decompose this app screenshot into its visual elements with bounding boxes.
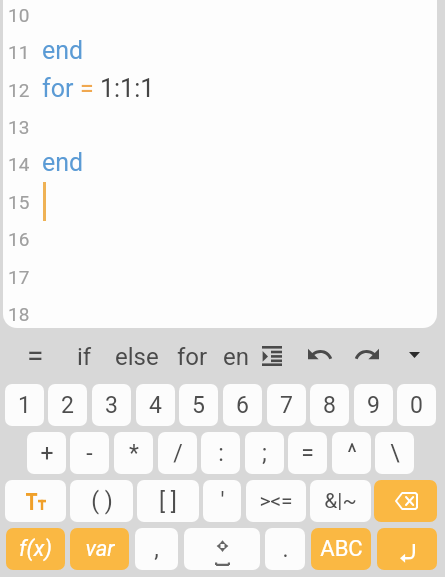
button[interactable]: * <box>114 432 153 474</box>
button[interactable]: 6 <box>223 384 262 426</box>
staticText: = <box>80 74 100 103</box>
staticText: 16 <box>8 228 30 250</box>
button[interactable]: - <box>70 432 109 474</box>
button[interactable]: 3 <box>92 384 131 426</box>
button[interactable]: ; <box>245 432 284 474</box>
button[interactable]: + <box>27 432 66 474</box>
button[interactable]: = <box>11 338 59 370</box>
staticText: 10 <box>8 4 30 26</box>
staticText: en <box>223 343 249 371</box>
button[interactable]: = <box>288 432 327 474</box>
staticText: . <box>282 536 289 563</box>
button[interactable]: 4 <box>136 384 175 426</box>
staticText: 3 <box>105 392 118 419</box>
staticText: ' <box>220 488 225 515</box>
button[interactable]: Indent <box>262 346 282 366</box>
button[interactable]: Undo <box>308 350 331 361</box>
staticText: 14 <box>8 153 30 175</box>
button[interactable]: if <box>60 341 108 373</box>
staticText: - <box>86 440 93 467</box>
staticText: if <box>77 343 92 371</box>
staticText: 13 <box>8 116 30 138</box>
staticText: var <box>85 536 115 562</box>
button[interactable]: ( ) <box>70 480 133 522</box>
staticText: + <box>40 440 54 467</box>
staticText: 5 <box>192 392 205 419</box>
staticText: ( ) <box>91 488 113 515</box>
button[interactable]: ABC <box>311 528 371 570</box>
button[interactable]: : <box>201 432 240 474</box>
button[interactable]: Space <box>184 528 260 570</box>
button[interactable]: var <box>70 528 129 570</box>
button[interactable]: , <box>135 528 178 570</box>
staticText: ; <box>262 440 267 467</box>
staticText: f(x) <box>19 536 52 562</box>
staticText: = <box>27 338 44 370</box>
staticText: = <box>301 440 314 467</box>
staticText: / <box>173 440 183 467</box>
staticText: 18 <box>8 303 30 325</box>
button[interactable]: ><= <box>246 480 306 522</box>
button[interactable]: &|~ <box>310 480 371 522</box>
staticText: 17 <box>8 266 30 288</box>
staticText: 6 <box>236 392 249 419</box>
button[interactable]: 5 <box>179 384 218 426</box>
staticText: ^ <box>347 440 357 467</box>
staticText: 1 <box>18 392 31 419</box>
staticText: : <box>218 440 224 467</box>
staticText: 9 <box>367 392 380 419</box>
button[interactable]: Enter <box>377 528 437 570</box>
staticText: , <box>154 536 159 563</box>
button[interactable]: \ <box>375 432 414 474</box>
button[interactable]: [ ] <box>137 480 199 522</box>
staticText: 11 <box>8 41 30 63</box>
staticText: ABC <box>320 536 363 562</box>
button[interactable]: else <box>113 341 161 373</box>
button[interactable]: ' <box>203 480 241 522</box>
button[interactable]: 1 <box>5 384 44 426</box>
button[interactable]: More options <box>409 352 420 358</box>
button[interactable]: en <box>212 341 260 373</box>
staticText: [ ] <box>159 488 177 515</box>
button[interactable]: 0 <box>397 384 436 426</box>
staticText: end <box>42 148 84 177</box>
staticText: 0 <box>410 392 423 419</box>
button[interactable]: . <box>265 528 305 570</box>
staticText: 8 <box>323 392 336 419</box>
staticText: * <box>129 440 139 467</box>
button[interactable]: Backspace <box>374 480 437 522</box>
staticText: \ <box>390 440 400 467</box>
button[interactable]: 8 <box>310 384 349 426</box>
button[interactable]: 2 <box>48 384 87 426</box>
staticText: 4 <box>149 392 162 419</box>
staticText: for <box>42 74 80 103</box>
button[interactable]: Text format <box>5 480 66 522</box>
button[interactable]: for <box>168 341 216 373</box>
button[interactable]: Redo <box>356 350 379 361</box>
button[interactable]: 9 <box>354 384 393 426</box>
staticText: 2 <box>61 392 74 419</box>
staticText: else <box>115 343 159 371</box>
button[interactable]: ^ <box>332 432 371 474</box>
staticText: 15 <box>8 191 30 213</box>
staticText: for <box>177 343 208 371</box>
button[interactable]: 7 <box>267 384 306 426</box>
staticText: 1:1:1 <box>100 74 155 103</box>
staticText: 12 <box>8 79 30 101</box>
button[interactable]: f(x) <box>6 528 65 570</box>
button[interactable]: / <box>158 432 197 474</box>
staticText: ><= <box>259 489 293 514</box>
staticText: end <box>42 36 84 65</box>
staticText: 7 <box>280 392 293 419</box>
staticText: &|~ <box>324 489 357 514</box>
